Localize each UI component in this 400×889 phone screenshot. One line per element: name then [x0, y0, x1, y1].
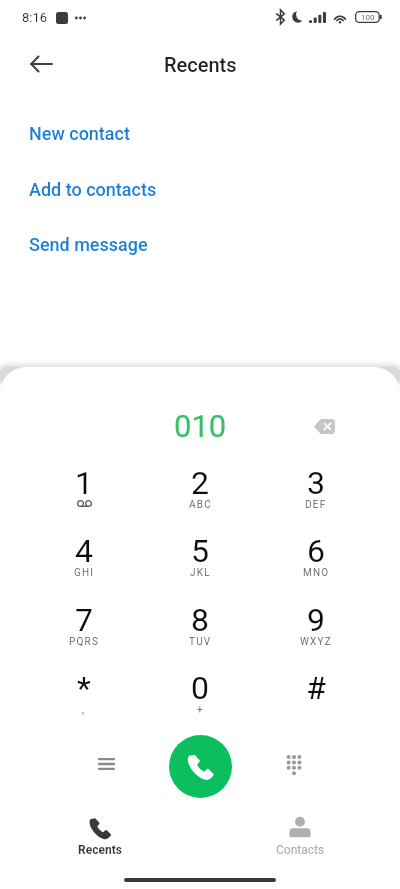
button[interactable]: 9 [258, 596, 374, 664]
staticText: 1 [75, 464, 93, 502]
staticText: 2 [191, 464, 209, 502]
staticText: 010 [174, 408, 227, 444]
staticText: Add to contacts [29, 179, 157, 200]
staticText: GHI [74, 567, 95, 579]
staticText: MNO [303, 567, 330, 579]
staticText: 5 [191, 532, 209, 570]
button[interactable]: 8 [142, 596, 258, 664]
button[interactable]: More options [83, 740, 130, 787]
staticText: * [77, 669, 91, 707]
button[interactable]: Call [169, 735, 232, 798]
button[interactable]: Keypad [270, 740, 317, 787]
button[interactable]: Back [17, 40, 65, 88]
button[interactable]: 5 [142, 527, 258, 595]
staticText: Recents [78, 843, 122, 857]
staticText: WXYZ [300, 636, 332, 648]
button[interactable]: 3 [258, 459, 374, 527]
staticText: TUV [189, 636, 212, 648]
button[interactable]: 7 [26, 596, 142, 664]
button[interactable]: 0 [142, 664, 258, 732]
button[interactable]: * [26, 664, 142, 732]
staticText: ABC [189, 499, 212, 511]
staticText: 4 [75, 532, 93, 570]
button[interactable]: Contacts [200, 806, 400, 862]
staticText: 8 [191, 601, 209, 639]
staticText: # [306, 669, 326, 707]
button[interactable]: Send message [0, 222, 400, 266]
staticText: 8:16 [22, 10, 48, 25]
staticText: Contacts [276, 843, 325, 857]
staticText: 100 [361, 13, 375, 22]
staticText: Send message [29, 234, 148, 255]
button[interactable]: Add to contacts [0, 167, 400, 211]
staticText: 7 [75, 601, 93, 639]
staticText: Recents [164, 53, 237, 76]
button[interactable]: 1 [26, 459, 142, 527]
staticText: JKL [190, 567, 211, 579]
staticText: 6 [307, 532, 325, 570]
button[interactable]: Backspace [302, 404, 346, 448]
staticText: 3 [307, 464, 325, 502]
button[interactable]: 6 [258, 527, 374, 595]
button[interactable]: 4 [26, 527, 142, 595]
button[interactable]: New contact [0, 111, 400, 155]
staticText: 9 [307, 601, 325, 639]
button[interactable]: Recents [0, 806, 200, 862]
staticText: PQRS [69, 636, 100, 648]
staticText: 0 [191, 669, 209, 707]
button[interactable]: # [258, 664, 374, 732]
staticText: DEF [305, 499, 327, 511]
staticText: New contact [29, 123, 130, 144]
button[interactable]: 2 [142, 459, 258, 527]
staticText: + [197, 704, 204, 716]
staticText: , [82, 704, 86, 716]
